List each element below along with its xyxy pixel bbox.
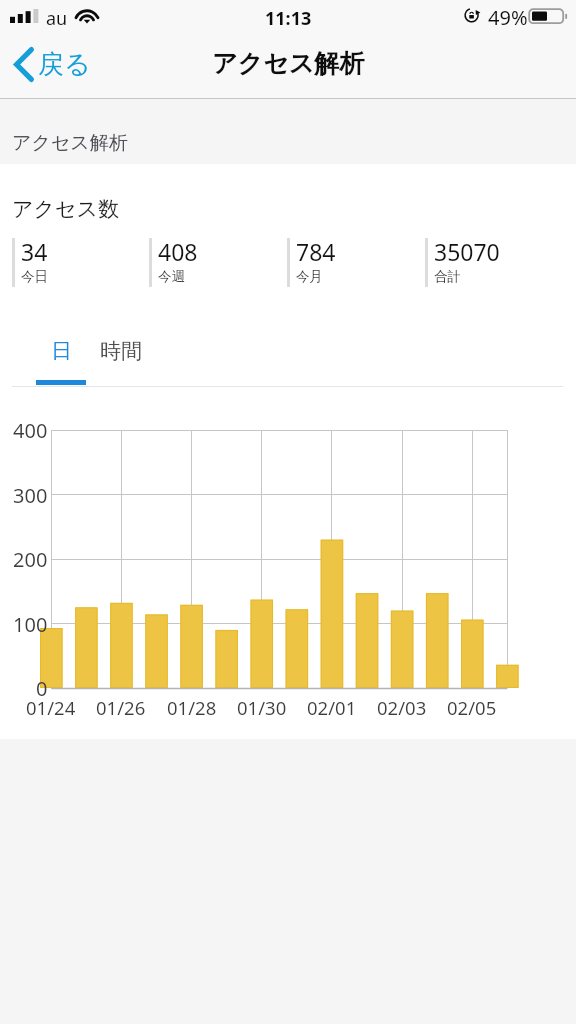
staticText: アクセス解析: [12, 131, 128, 155]
button[interactable]: 408: [149, 238, 287, 287]
staticText: 49%: [488, 4, 528, 31]
staticText: 02/03: [377, 695, 427, 720]
staticText: 35070: [434, 236, 500, 267]
button[interactable]: 35070: [425, 238, 563, 287]
staticText: 合計: [434, 268, 461, 285]
staticText: 100: [13, 611, 48, 637]
button[interactable]: 戻る: [0, 39, 101, 90]
staticText: アクセス解析: [212, 48, 365, 79]
button[interactable]: 34: [12, 238, 149, 287]
staticText: 0: [36, 675, 48, 701]
other: Daily access bar chart: [0, 0, 576, 1024]
other: Rotation lock: [462, 7, 483, 25]
other: Wi-Fi: [75, 8, 101, 24]
staticText: 日: [51, 338, 72, 364]
staticText: 200: [13, 546, 48, 572]
staticText: 01/26: [96, 695, 146, 720]
staticText: 01/24: [26, 695, 76, 720]
button[interactable]: 日: [36, 326, 86, 376]
staticText: 時間: [100, 338, 142, 364]
staticText: アクセス数: [12, 196, 119, 222]
staticText: 01/30: [237, 695, 287, 720]
other: Battery 49 percent: [528, 8, 570, 24]
staticText: 今週: [158, 268, 185, 285]
staticText: 戻る: [38, 48, 91, 81]
staticText: 02/05: [447, 695, 497, 720]
staticText: 01/28: [167, 695, 217, 720]
staticText: 400: [13, 417, 48, 443]
staticText: 今月: [296, 268, 323, 285]
staticText: 784: [296, 236, 336, 267]
staticText: 02/01: [307, 695, 357, 720]
staticText: 408: [158, 236, 198, 267]
staticText: 11:13: [265, 6, 312, 31]
other: Cellular signal strength: [10, 9, 38, 23]
button[interactable]: 784: [287, 238, 425, 287]
staticText: 今日: [21, 268, 48, 285]
staticText: 300: [13, 482, 48, 508]
staticText: 34: [21, 236, 48, 267]
staticText: au: [46, 6, 68, 31]
button[interactable]: 時間: [92, 326, 150, 376]
